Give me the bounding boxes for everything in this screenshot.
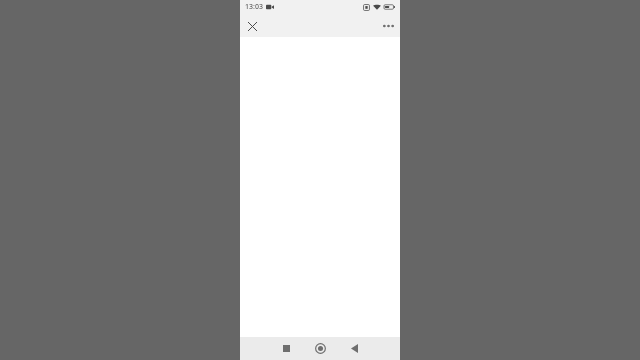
staticText: 13:03	[245, 2, 263, 12]
button[interactable]: Close	[242, 16, 262, 36]
button[interactable]: Home	[303, 337, 337, 360]
button[interactable]: Recent apps	[269, 337, 303, 360]
button[interactable]: Back	[337, 337, 371, 360]
button[interactable]: More options	[378, 16, 398, 36]
